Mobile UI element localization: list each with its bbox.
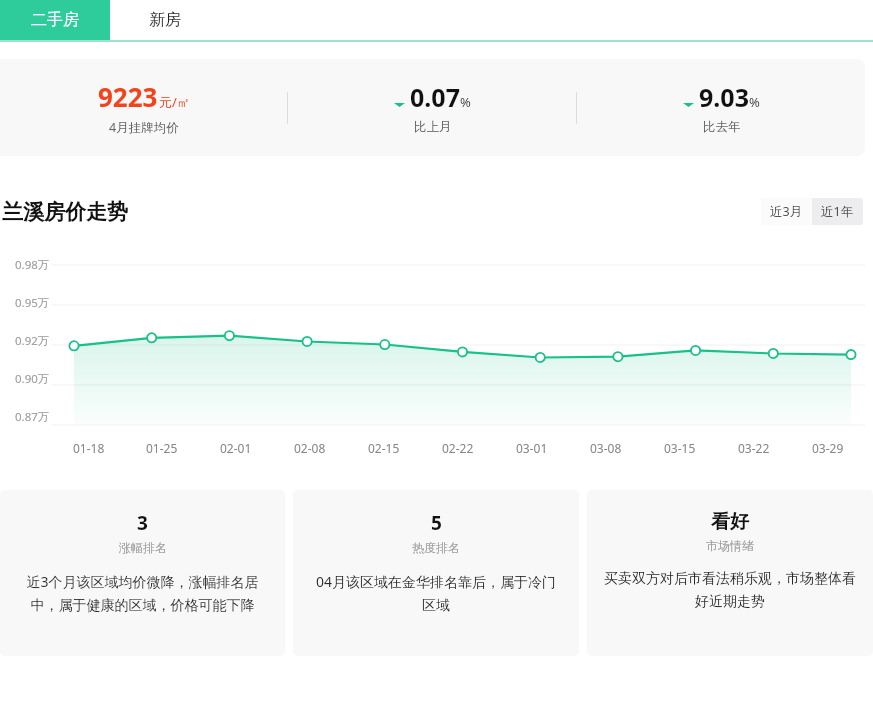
staticText: 二手房 (31, 10, 79, 30)
staticText: 买卖双方对后市看法稍乐观，市场整体看好近期走势 (603, 570, 857, 610)
button[interactable]: 二手房 (0, 0, 110, 40)
staticText: 比上月 (414, 119, 452, 135)
staticText: 近3月 (770, 203, 803, 220)
staticText: 看好 (711, 510, 749, 534)
staticText: 02-01 (220, 440, 252, 456)
staticText: 新房 (149, 10, 181, 30)
staticText: 01-18 (73, 440, 105, 456)
staticText: 01-25 (146, 440, 178, 456)
staticText: 03-15 (664, 440, 696, 456)
staticText: 5 (431, 510, 442, 536)
staticText: 03-22 (738, 440, 770, 456)
button[interactable]: 5 (293, 490, 579, 656)
staticText: 04月该区域在金华排名靠后，属于冷门区域 (309, 572, 563, 614)
staticText: 比去年 (703, 119, 741, 135)
staticText: 0.90万 (15, 371, 50, 387)
button[interactable]: 新房 (110, 0, 220, 40)
staticText: 涨幅排名 (119, 540, 167, 555)
staticText: 0.87万 (15, 409, 50, 425)
button[interactable]: 看好 (587, 490, 873, 656)
staticText: 02-15 (368, 440, 400, 456)
button[interactable]: 近3月 (761, 198, 812, 225)
staticText: 3 (137, 510, 148, 536)
button[interactable]: 近1年 (812, 198, 863, 225)
staticText: 近1年 (821, 203, 854, 220)
staticText: 热度排名 (412, 540, 460, 555)
staticText: 市场情绪 (706, 538, 754, 553)
button[interactable]: 3 (0, 490, 285, 656)
staticText: 兰溪房价走势 (2, 199, 128, 225)
staticText: 0.95万 (15, 295, 50, 311)
staticText: % (749, 93, 760, 111)
staticText: 0.92万 (15, 333, 50, 349)
staticText: 03-29 (812, 440, 844, 456)
staticText: 02-22 (442, 440, 474, 456)
staticText: 4月挂牌均价 (109, 119, 179, 136)
staticText: 03-08 (590, 440, 622, 456)
staticText: 0.07 (410, 80, 460, 114)
staticText: % (460, 93, 471, 111)
staticText: 近3个月该区域均价微降，涨幅排名居中，属于健康的区域，价格可能下降 (16, 572, 269, 614)
staticText: 03-01 (516, 440, 548, 456)
staticText: 02-08 (294, 440, 326, 456)
staticText: 0.98万 (15, 257, 50, 273)
staticText: 9.03 (699, 80, 749, 114)
staticText: 元/㎡ (159, 93, 190, 111)
staticText: 9223 (98, 79, 158, 114)
